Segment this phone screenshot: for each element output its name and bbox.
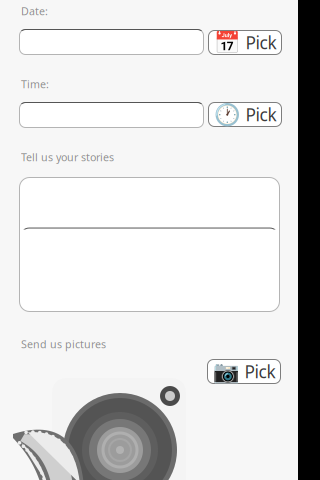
button[interactable]: Pick time (208, 102, 282, 127)
staticText: Send us pictures (21, 337, 106, 351)
staticText: 🕐 (213, 102, 240, 127)
staticText: Pick (245, 31, 276, 54)
staticText: Time: (21, 77, 49, 91)
staticText: 📷 (212, 359, 239, 384)
staticText: Date: (21, 4, 48, 18)
staticText: 📅 (213, 30, 240, 55)
staticText: Pick (245, 103, 276, 126)
button[interactable]: Pick pictures (207, 359, 281, 384)
staticText: Pick (244, 360, 275, 383)
staticText: Tell us your stories (21, 150, 114, 164)
button[interactable]: Pick date (208, 30, 282, 55)
